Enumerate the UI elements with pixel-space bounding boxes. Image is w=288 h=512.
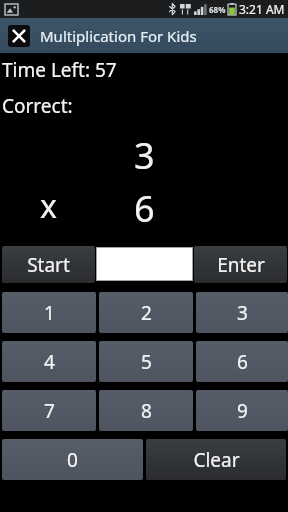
staticText: 5	[141, 349, 152, 375]
button[interactable]: Start	[2, 246, 95, 283]
staticText: 7	[44, 398, 55, 424]
button[interactable]: 0	[2, 439, 143, 480]
button[interactable]: 2	[99, 292, 193, 333]
button[interactable]: 6	[196, 341, 288, 382]
staticText: 3	[237, 300, 248, 326]
button[interactable]: Clear	[146, 439, 286, 480]
staticText: Clear	[193, 447, 240, 473]
staticText: 8	[141, 398, 152, 424]
staticText: 2	[141, 300, 152, 326]
button[interactable]: Enter	[194, 246, 287, 283]
staticText: Enter	[217, 252, 265, 278]
staticText: 6	[237, 349, 248, 375]
staticText: Multiplication For Kids	[40, 26, 197, 46]
staticText: x	[40, 184, 57, 228]
button[interactable]: 4	[2, 341, 96, 382]
button[interactable]: 7	[2, 390, 96, 431]
staticText: 4	[44, 349, 55, 375]
staticText: 3	[134, 131, 155, 180]
staticText: 6	[134, 184, 155, 233]
staticText: Start	[27, 252, 70, 278]
staticText: 0	[67, 447, 78, 473]
staticText: 9	[237, 398, 248, 424]
button[interactable]: App icon, navigate up	[8, 25, 30, 47]
staticText: 3:21 AM	[239, 1, 285, 17]
staticText: Correct:	[2, 93, 73, 119]
button[interactable]: 5	[99, 341, 193, 382]
button[interactable]: 3	[196, 292, 288, 333]
button[interactable]: 9	[196, 390, 288, 431]
staticText: 68%	[209, 4, 226, 15]
staticText: 1	[44, 300, 55, 326]
button[interactable]: 1	[2, 292, 96, 333]
button[interactable]: 8	[99, 390, 193, 431]
staticText: Time Left: 57	[2, 57, 117, 83]
